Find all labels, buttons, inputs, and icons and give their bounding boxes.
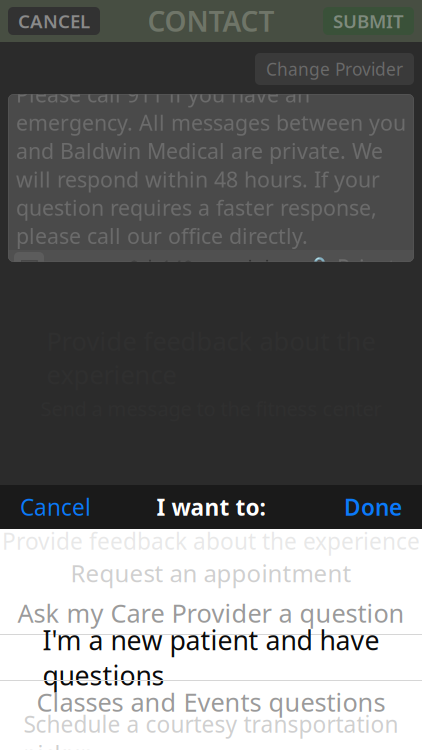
- staticText: Classes and Events questions: [36, 685, 385, 719]
- staticText: SUBMIT: [333, 9, 404, 33]
- staticText: Provide feedback about the experience: [2, 526, 420, 556]
- staticText: 0 | 140 remaining: [128, 254, 293, 280]
- button[interactable]: Classes and Events questions: [0, 681, 422, 723]
- staticText: Request an appointment: [70, 557, 351, 589]
- staticText: CONTACT: [147, 2, 274, 40]
- staticText: I'm a new patient and have questions: [42, 622, 379, 693]
- button[interactable]: Change Provider: [255, 53, 414, 85]
- staticText: ▣: [18, 254, 39, 280]
- staticText: CANCEL: [18, 9, 90, 33]
- button[interactable]: Done: [336, 485, 410, 529]
- staticText: Done: [344, 492, 402, 522]
- button[interactable]: Request an appointment: [0, 554, 422, 592]
- staticText: Ask my Care Provider a question: [17, 596, 404, 630]
- button[interactable]: Ask my Care Provider a question: [0, 592, 422, 634]
- button[interactable]: Schedule a courtesy transportation picku…: [0, 723, 422, 750]
- staticText: I want to:: [156, 492, 265, 522]
- button[interactable]: SUBMIT: [323, 7, 414, 35]
- button[interactable]: I'm a new patient and have questions: [0, 635, 422, 680]
- button[interactable]: CANCEL: [8, 7, 100, 35]
- button[interactable]: Attach photo: [14, 252, 44, 282]
- staticText: Cancel: [20, 492, 91, 522]
- staticText: Schedule a courtesy transportation picku…: [23, 709, 398, 750]
- button[interactable]: 🔒: [307, 253, 408, 281]
- staticText: Please call 911 if you have an emergency…: [16, 80, 406, 250]
- staticText: Change Provider: [266, 57, 403, 80]
- button[interactable]: Cancel: [12, 485, 99, 529]
- staticText: 🔒: [307, 256, 332, 278]
- staticText: Private: [337, 253, 408, 281]
